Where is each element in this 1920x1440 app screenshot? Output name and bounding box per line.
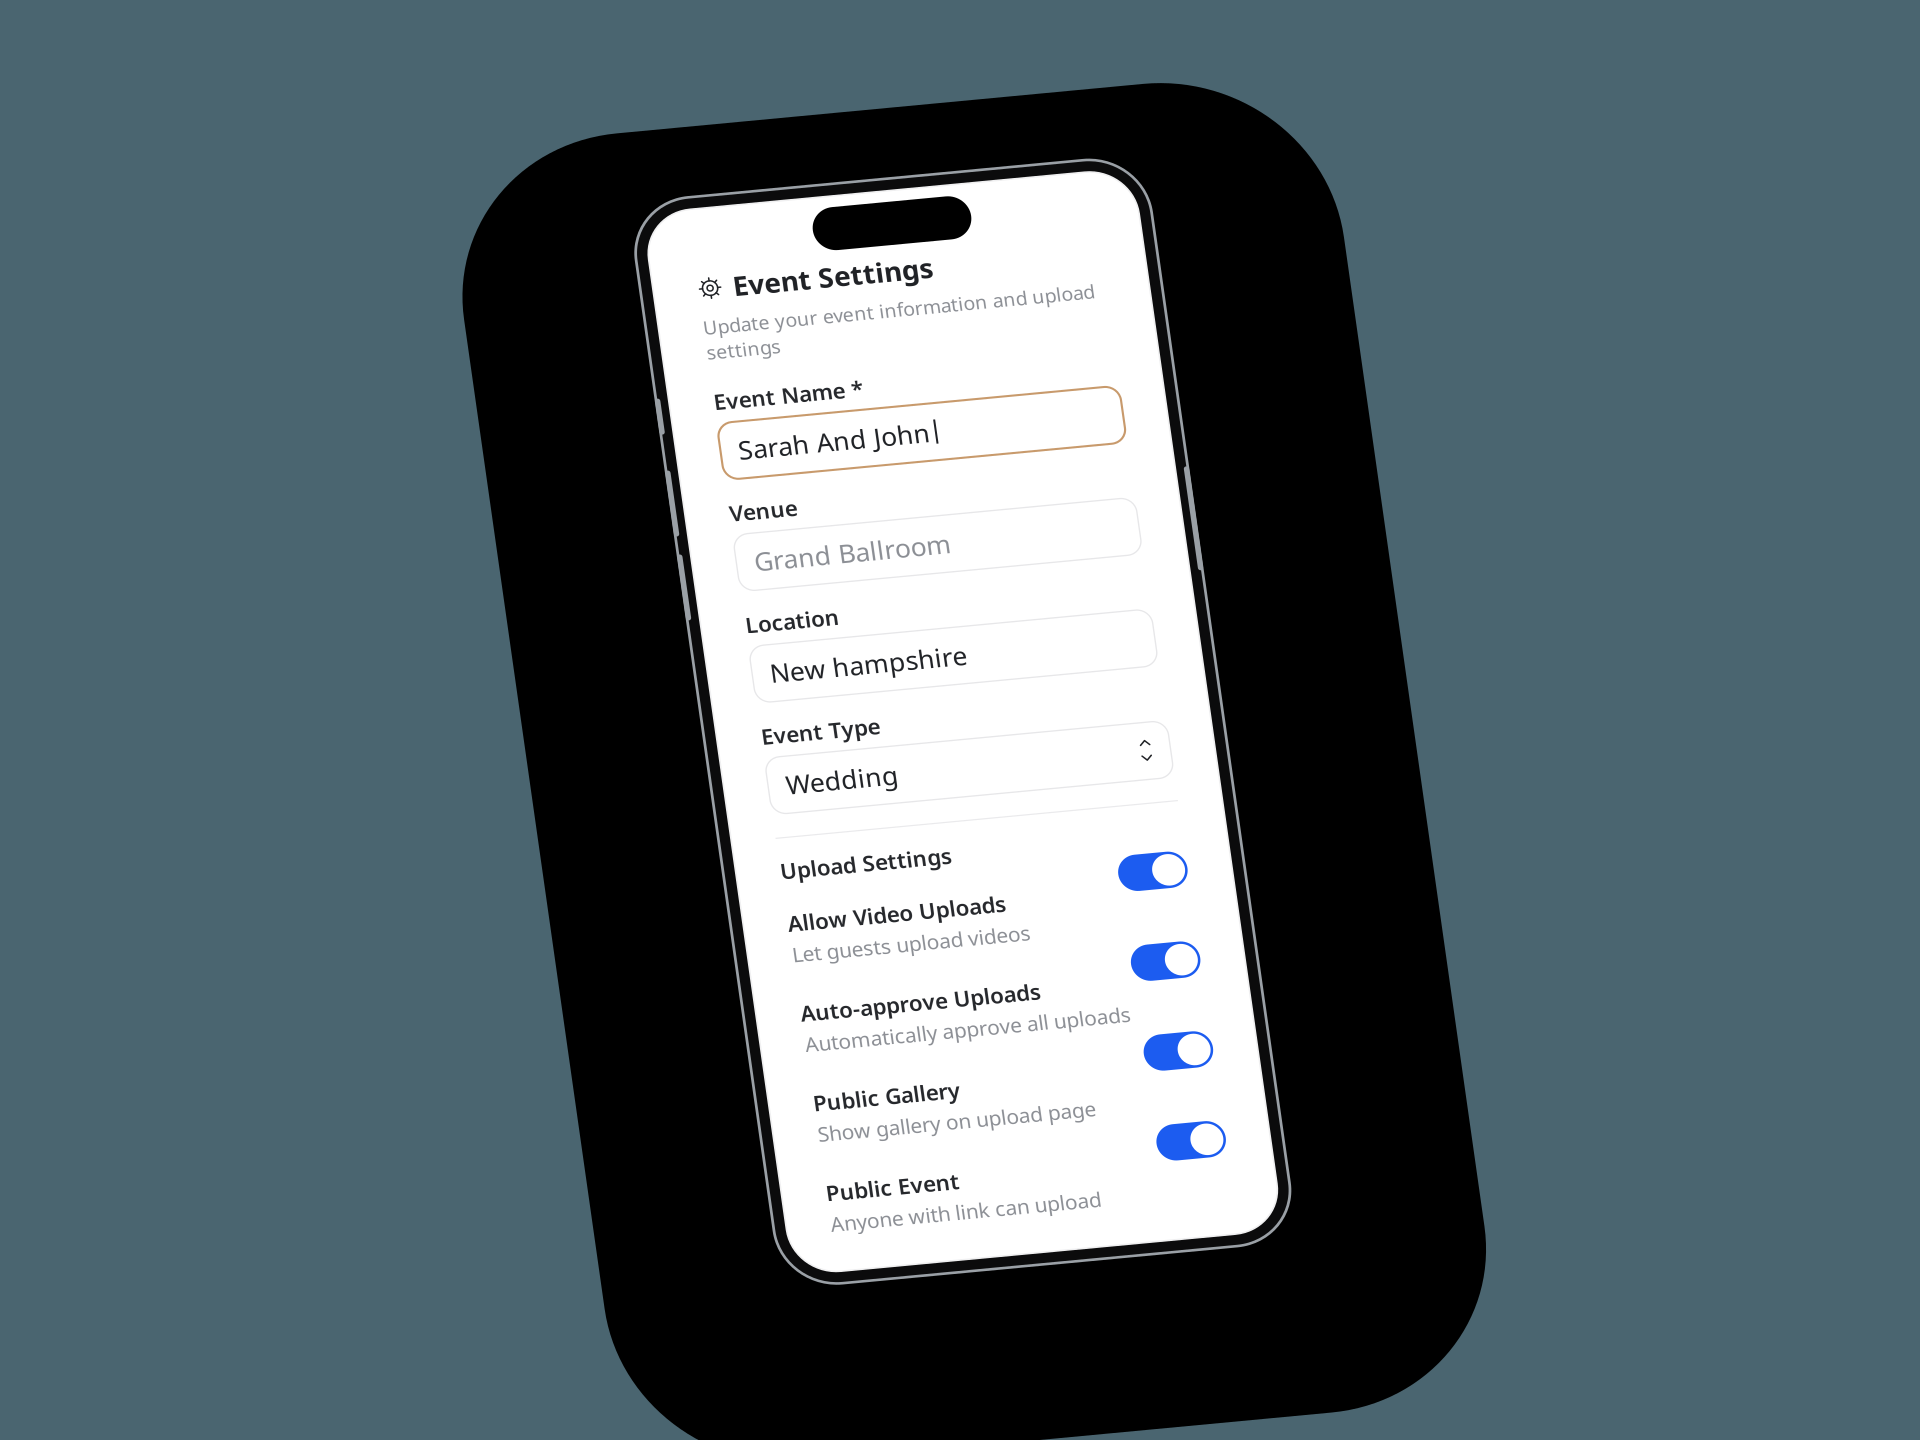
staticText: Event Name *	[682, 393, 826, 422]
staticText: Wedding	[699, 776, 807, 809]
button[interactable]: New hampshire	[682, 652, 1069, 709]
staticText: Event Type	[682, 728, 796, 757]
button[interactable]: Grand Ballroom	[682, 541, 1069, 597]
staticText: Automatically approve all uploads	[682, 1037, 995, 1064]
button[interactable]: Auto-approve Uploads	[682, 984, 1069, 1074]
button[interactable]: Sarah And John	[682, 429, 1069, 486]
staticText: Sarah And John	[699, 440, 883, 474]
staticText: Auto-approve Uploads	[682, 1005, 913, 1034]
staticText: Public Event	[682, 1185, 810, 1214]
staticText: Upload Settings	[682, 863, 847, 891]
staticText: Grand Ballroom	[699, 552, 888, 586]
button[interactable]: Public Event	[682, 1164, 1069, 1253]
staticText: Update your event information and upload…	[682, 321, 1058, 370]
staticText: Allow Video Uploads	[682, 916, 892, 944]
button[interactable]: Public Gallery	[682, 1074, 1069, 1164]
staticText: Let guests upload videos	[682, 947, 911, 974]
staticText: Event Settings	[716, 277, 908, 312]
staticText: Location	[682, 617, 772, 645]
staticText: Venue	[682, 505, 747, 533]
staticText: Show gallery on upload page	[682, 1127, 949, 1154]
staticText: New hampshire	[699, 664, 888, 697]
staticText: Anyone with link can upload	[682, 1217, 942, 1244]
button[interactable]: Wedding	[682, 764, 1069, 821]
staticText: Public Gallery	[682, 1095, 823, 1124]
button[interactable]: Allow Video Uploads	[682, 894, 1069, 984]
